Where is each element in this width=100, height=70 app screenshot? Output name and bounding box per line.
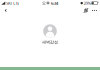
staticText: SKT LTE	[6, 0, 19, 6]
staticText: 새벽감성	[42, 40, 58, 44]
button[interactable]: More options	[90, 6, 99, 15]
button[interactable]: Back	[1, 6, 10, 15]
staticText: 오후 6:34	[42, 0, 58, 6]
staticText: 29%	[84, 0, 91, 6]
button[interactable]: Mute notifications	[82, 6, 90, 15]
